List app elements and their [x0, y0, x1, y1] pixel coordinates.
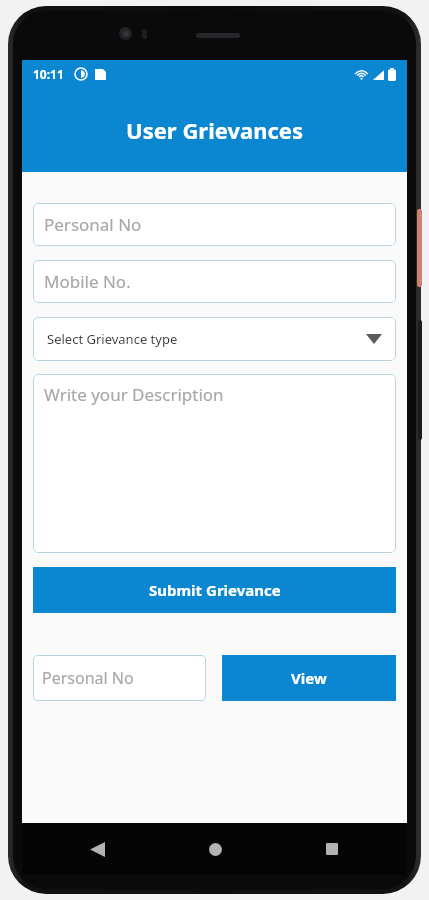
button[interactable]: Select Grievance type — [33, 317, 396, 361]
staticText: Personal No — [42, 667, 134, 689]
staticText: Write your Description — [44, 383, 224, 406]
button[interactable]: View — [222, 655, 396, 701]
staticText: User Grievances — [126, 115, 303, 145]
button[interactable]: Submit Grievance — [33, 567, 396, 613]
button[interactable]: Recent apps — [315, 832, 349, 866]
staticText: View — [291, 668, 327, 688]
button[interactable]: Personal No — [33, 655, 206, 701]
button[interactable]: Back — [80, 832, 114, 866]
button[interactable]: Mobile No. — [33, 260, 396, 303]
staticText: Mobile No. — [44, 270, 131, 293]
button[interactable]: Home — [198, 832, 232, 866]
staticText: Select Grievance type — [47, 330, 178, 348]
button[interactable]: Write your Description — [33, 374, 396, 553]
staticText: Personal No — [44, 213, 142, 236]
staticText: Submit Grievance — [149, 580, 281, 600]
staticText: 10:11 — [33, 66, 64, 82]
button[interactable]: Personal No — [33, 203, 396, 246]
